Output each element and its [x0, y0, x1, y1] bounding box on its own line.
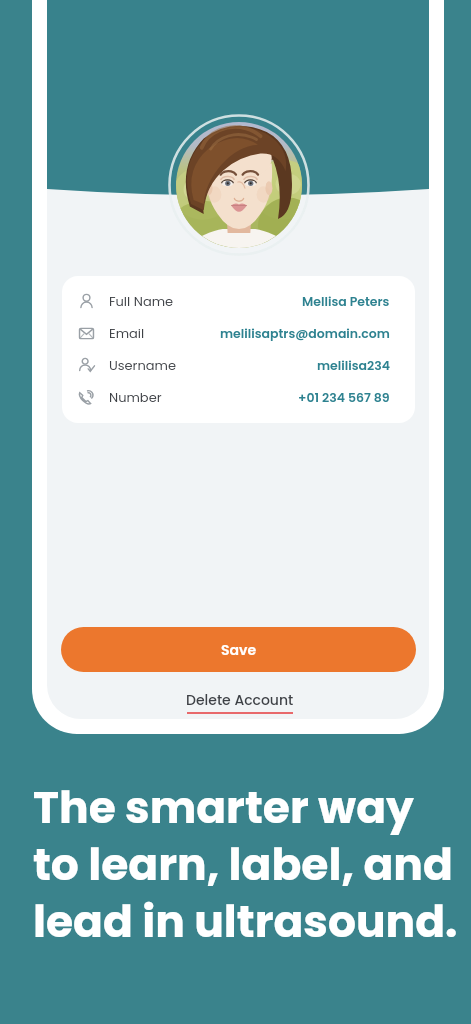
button[interactable]: Delete Account	[49, 690, 429, 718]
staticText: melilisaptrs@domain.com	[220, 325, 390, 342]
staticText: Email	[109, 324, 145, 342]
staticText: Full Name	[109, 292, 174, 310]
staticText: Username	[109, 356, 177, 374]
staticText: Delete Account	[186, 690, 294, 710]
staticText: +01 234 567 89	[298, 389, 390, 406]
staticText: Number	[109, 388, 162, 406]
staticText: Mellisa Peters	[302, 293, 390, 310]
button[interactable]: Save	[61, 627, 416, 672]
button[interactable]: Username	[78, 349, 390, 381]
button[interactable]: Number	[78, 381, 390, 413]
staticText: Save	[221, 640, 257, 660]
staticText: melilisa234	[317, 357, 390, 374]
button[interactable]: Email	[78, 317, 390, 349]
staticText: The smarter way to learn, label, and lea…	[33, 777, 458, 952]
button[interactable]: Full Name	[78, 285, 390, 317]
